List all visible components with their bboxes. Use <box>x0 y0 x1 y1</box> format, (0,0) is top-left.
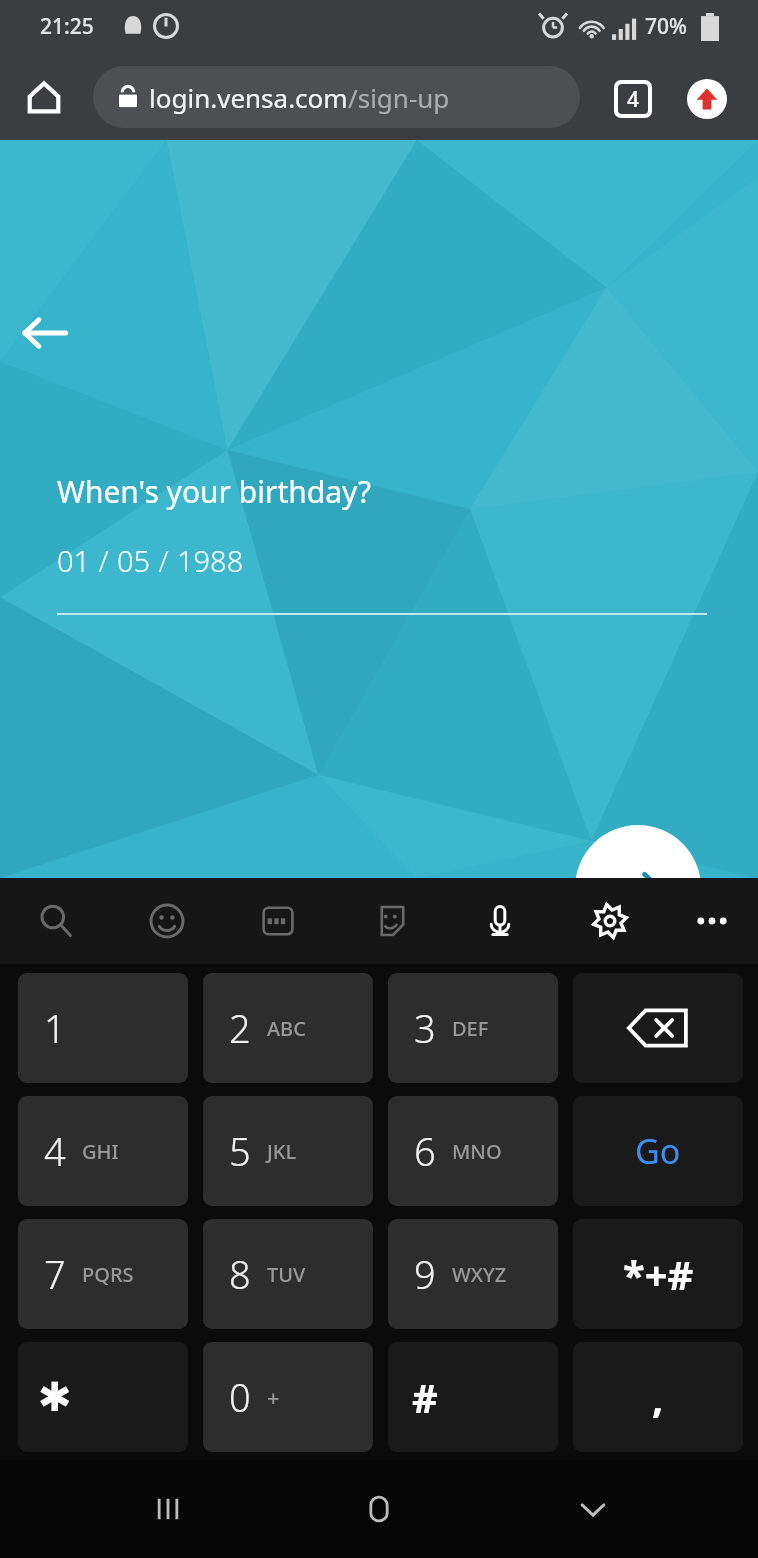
staticText: 01 <box>57 541 91 580</box>
staticText: 4 <box>44 1125 66 1177</box>
staticText: /sign-up <box>348 80 450 115</box>
staticText: JKL <box>267 1138 297 1165</box>
button[interactable]: Home <box>339 1479 419 1539</box>
staticText: / <box>91 541 117 580</box>
staticText: 0 <box>229 1371 251 1423</box>
staticText: 05 <box>117 541 151 580</box>
staticText: PQRS <box>82 1261 134 1288</box>
staticText: 9 <box>414 1248 436 1300</box>
button[interactable]: 8 <box>203 1219 373 1329</box>
staticText: # <box>412 1370 438 1424</box>
staticText: ABC <box>267 1015 306 1042</box>
staticText: + <box>267 1382 280 1412</box>
button[interactable]: Symbols <box>573 1219 743 1329</box>
staticText: GHI <box>82 1138 119 1165</box>
button[interactable]: Stickers <box>356 894 424 948</box>
button[interactable]: GIF <box>244 894 312 948</box>
button[interactable]: 1 <box>18 973 188 1083</box>
button[interactable]: Comma <box>573 1342 743 1452</box>
button[interactable]: Settings <box>576 894 644 948</box>
button[interactable]: 2 <box>203 973 373 1083</box>
staticText: 4 <box>627 85 640 114</box>
staticText: / <box>151 541 177 580</box>
button[interactable]: Hash <box>388 1342 558 1452</box>
staticText: 1988 <box>177 541 244 580</box>
staticText: DEF <box>452 1015 489 1042</box>
button[interactable]: Search <box>22 894 90 948</box>
button[interactable]: 6 <box>388 1096 558 1206</box>
staticText: Go <box>635 1128 681 1174</box>
staticText: 2 <box>229 1002 251 1054</box>
staticText: 70% <box>645 12 687 41</box>
staticText: 1 <box>44 1002 66 1054</box>
button[interactable]: 0 <box>203 1342 373 1452</box>
staticText: 5 <box>229 1125 251 1177</box>
button[interactable]: Go <box>573 1096 743 1206</box>
button[interactable]: Star <box>18 1342 188 1452</box>
staticText: 3 <box>414 1002 436 1054</box>
staticText: 21:25 <box>40 12 94 41</box>
staticText: MNO <box>452 1138 502 1165</box>
staticText: 6 <box>414 1125 436 1177</box>
staticText: login.vensa.com <box>149 80 348 115</box>
button[interactable]: Tabs <box>610 76 656 122</box>
button[interactable]: More options <box>678 894 746 948</box>
staticText: *+# <box>623 1247 694 1301</box>
button[interactable]: Hide keyboard <box>553 1479 633 1539</box>
button[interactable]: Home <box>22 75 66 119</box>
button[interactable]: Voice input <box>466 894 534 948</box>
staticText: When's your birthday? <box>57 471 371 512</box>
button[interactable]: 7 <box>18 1219 188 1329</box>
staticText: 8 <box>229 1248 251 1300</box>
button[interactable]: Delete <box>573 973 743 1083</box>
button[interactable]: Emoji <box>133 894 201 948</box>
staticText: , <box>652 1370 664 1424</box>
button[interactable]: 3 <box>388 973 558 1083</box>
button[interactable]: Update <box>684 76 730 122</box>
button[interactable]: 9 <box>388 1219 558 1329</box>
button[interactable]: 4 <box>18 1096 188 1206</box>
button[interactable]: 5 <box>203 1096 373 1206</box>
staticText: TUV <box>267 1261 306 1288</box>
button[interactable]: Recent apps <box>128 1479 208 1539</box>
button[interactable]: login.vensa.com <box>93 66 580 128</box>
staticText: WXYZ <box>452 1261 507 1288</box>
button[interactable]: Back <box>14 302 76 364</box>
staticText: ✱ <box>38 1374 72 1421</box>
staticText: 7 <box>44 1248 66 1300</box>
button[interactable]: Next <box>575 825 701 951</box>
